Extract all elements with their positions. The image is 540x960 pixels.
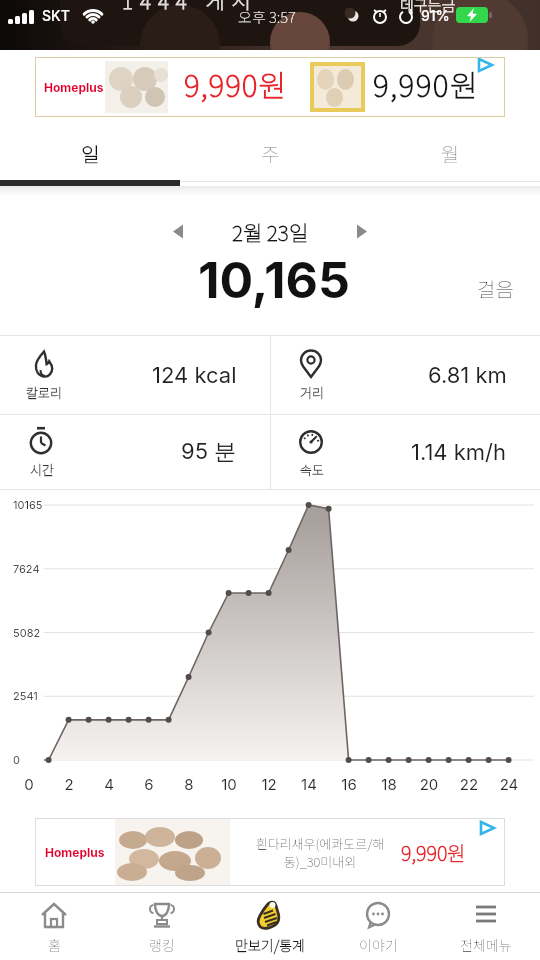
staticText: 칼로리	[26, 383, 62, 402]
button[interactable]: 홈	[0, 892, 108, 960]
staticText: 10165	[13, 498, 43, 511]
button[interactable]: 일	[0, 125, 180, 181]
staticText: 10	[214, 775, 244, 793]
staticText: 5082	[13, 626, 41, 639]
staticText: 속도	[300, 460, 324, 479]
staticText: 18	[374, 775, 404, 793]
staticText: 91%	[421, 7, 450, 24]
button[interactable]	[172, 224, 184, 239]
staticText: 16	[334, 775, 364, 793]
staticText: 전체메뉴	[460, 935, 512, 955]
staticText: 1.14 km/h	[411, 439, 507, 466]
staticText: 랭킹	[149, 935, 175, 955]
staticText: 거리	[300, 383, 324, 402]
staticText: 이야기	[359, 935, 398, 955]
button[interactable]: Homeplus	[35, 57, 505, 117]
button[interactable]: 이야기	[324, 892, 432, 960]
staticText: 24	[494, 775, 524, 793]
staticText: 데구든금	[400, 0, 456, 16]
staticText: 7624	[13, 562, 40, 575]
staticText: 9,990원	[401, 838, 466, 867]
staticText: 95 분	[181, 438, 237, 466]
staticText: 1444 게시	[122, 0, 259, 15]
staticText: 0	[14, 775, 44, 793]
staticText: 124 kcal	[152, 362, 237, 389]
staticText: 10,165	[4, 250, 540, 310]
staticText: 4	[94, 775, 124, 793]
button[interactable]: 월	[360, 125, 540, 181]
staticText: 6.81 km	[428, 362, 507, 389]
staticText: 만보기/통계	[235, 935, 305, 955]
staticText: 6	[134, 775, 164, 793]
staticText: 14	[294, 775, 324, 793]
staticText: 주	[261, 139, 280, 168]
staticText: Homeplus	[45, 845, 105, 860]
staticText: 흰다리새우(에콰도르/해 동)_30미내외	[230, 834, 410, 871]
staticText: 9,990원	[373, 62, 480, 105]
staticText: 2541	[13, 689, 38, 702]
button[interactable]: Homeplus	[35, 818, 505, 886]
staticText: 2	[54, 775, 84, 793]
staticText: 2월 23일	[0, 217, 540, 247]
staticText: 걸음	[477, 274, 514, 303]
staticText: 월	[441, 139, 460, 168]
staticText: Homeplus	[44, 80, 104, 95]
staticText: 9,990원	[184, 62, 288, 105]
button[interactable]: 랭킹	[108, 892, 216, 960]
staticText: SKT	[42, 7, 70, 24]
staticText: 홈	[48, 935, 61, 955]
staticText: 22	[454, 775, 484, 793]
button[interactable]: 만보기/통계	[216, 892, 324, 960]
button[interactable]	[356, 224, 368, 239]
staticText: 오후 3:57	[238, 6, 296, 28]
staticText: 시간	[30, 460, 54, 479]
staticText: 20	[414, 775, 444, 793]
staticText: 12	[254, 775, 284, 793]
button[interactable]: 전체메뉴	[432, 892, 540, 960]
staticText: 0	[13, 753, 20, 766]
staticText: 일	[81, 139, 100, 168]
staticText: 8	[174, 775, 204, 793]
button[interactable]: 주	[180, 125, 360, 181]
